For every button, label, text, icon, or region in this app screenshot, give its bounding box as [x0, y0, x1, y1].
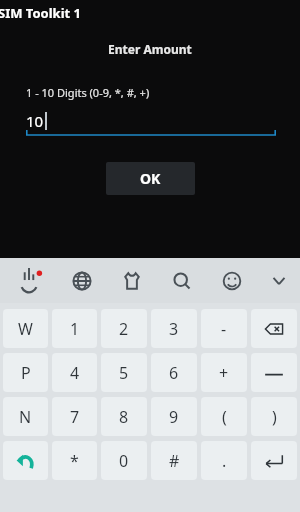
staticText: Enter Amount	[108, 41, 192, 57]
staticText: N	[19, 406, 32, 428]
button[interactable]: 9	[151, 397, 197, 436]
button[interactable]: (	[201, 397, 247, 436]
staticText: 10	[26, 111, 44, 131]
button[interactable]: *	[52, 441, 97, 480]
button[interactable]: OK	[106, 162, 195, 195]
staticText: 5	[119, 362, 129, 384]
button[interactable]: P	[3, 353, 48, 392]
staticText: 8	[119, 406, 129, 428]
button[interactable]: 2	[101, 309, 147, 348]
button[interactable]: 6	[151, 353, 197, 392]
staticText: +	[219, 362, 229, 384]
button[interactable]: )	[251, 397, 297, 436]
button[interactable]: Search	[157, 258, 207, 303]
staticText: 6	[169, 362, 179, 384]
staticText: )	[272, 406, 277, 428]
staticText: 3	[169, 318, 179, 340]
staticText: (	[222, 406, 227, 428]
staticText: P	[21, 362, 31, 384]
staticText: #	[169, 450, 180, 472]
button[interactable]: 7	[52, 397, 97, 436]
button[interactable]: 8	[101, 397, 147, 436]
button[interactable]: .	[201, 441, 247, 480]
button[interactable]: N	[3, 397, 48, 436]
staticText: 1	[70, 318, 80, 340]
staticText: *	[70, 450, 79, 472]
button[interactable]: 5	[101, 353, 147, 392]
staticText: 1 - 10 Digits (0-9, *, #, +)	[26, 85, 150, 100]
staticText: 0	[119, 450, 129, 472]
button[interactable]: 0	[101, 441, 147, 480]
button[interactable]: Undo	[3, 441, 48, 480]
staticText: -	[221, 318, 227, 340]
button[interactable]: +	[201, 353, 247, 392]
staticText: 7	[70, 406, 80, 428]
button[interactable]: 3	[151, 309, 197, 348]
button[interactable]: -	[201, 309, 247, 348]
staticText: 9	[169, 406, 179, 428]
staticText: 4	[70, 362, 80, 384]
staticText: SIM Toolkit 1	[0, 4, 81, 22]
button[interactable]: Collapse	[257, 258, 300, 303]
button[interactable]: #	[151, 441, 197, 480]
staticText: OK	[140, 169, 161, 188]
button[interactable]: Delete	[251, 309, 297, 348]
staticText: 2	[119, 318, 129, 340]
button[interactable]: Enter	[251, 441, 297, 480]
button[interactable]: 1	[52, 309, 97, 348]
button[interactable]: 10	[26, 106, 276, 136]
button[interactable]: W	[3, 309, 48, 348]
button[interactable]: 4	[52, 353, 97, 392]
staticText: W	[18, 318, 33, 340]
button[interactable]: Language	[57, 258, 107, 303]
button[interactable]: Emoji	[207, 258, 257, 303]
button[interactable]: Stickers	[107, 258, 157, 303]
button[interactable]: Space	[251, 353, 297, 392]
staticText: .	[222, 450, 227, 472]
button[interactable]: Keyboard settings	[0, 258, 57, 303]
